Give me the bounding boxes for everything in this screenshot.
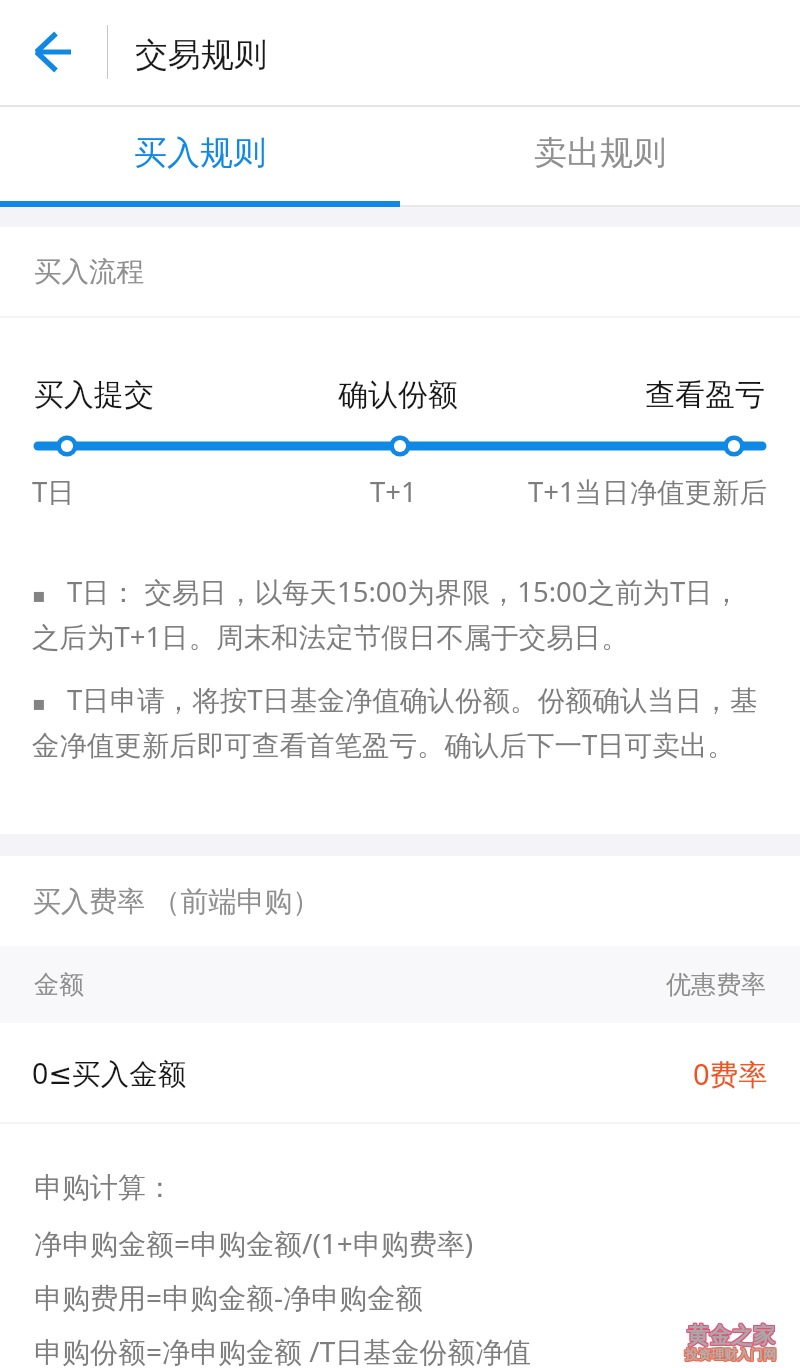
staticText: ▪ T日： 交易日，以每天15:00为界限，15:00之前为T日，之后为T+1日…	[32, 573, 762, 655]
staticText: 黄金之家	[688, 1323, 776, 1351]
button[interactable]: 卖出规则	[400, 105, 800, 201]
staticText: 投资理财入门网	[686, 1347, 777, 1363]
staticText: 黄金之家	[687, 1323, 775, 1351]
staticText: 投资理财入门网	[684, 1347, 775, 1363]
staticText: 投资理财入门网	[685, 1345, 776, 1361]
staticText: 0≤买入金额	[32, 1054, 187, 1093]
staticText: 交易规则	[135, 34, 267, 76]
staticText: 优惠费率	[666, 969, 766, 1000]
staticText: 查看盈亏	[645, 376, 765, 414]
staticText: T日	[32, 473, 75, 511]
staticText: ▪ T日申请，将按T日基金净值确认份额。份额确认当日，基金净值更新后即可查看首笔…	[32, 681, 762, 763]
staticText: 净申购金额=申购金额/(1+申购费率)	[34, 1224, 474, 1262]
staticText: 买入费率 （前端申购）	[33, 881, 321, 919]
staticText: 申购费用=申购金额-净申购金额	[34, 1278, 424, 1316]
staticText: 黄金之家	[686, 1323, 774, 1351]
staticText: 黄金之家	[688, 1322, 776, 1350]
staticText: 投资理财入门网	[684, 1345, 775, 1361]
button[interactable]: 0≤买入金额	[0, 1023, 800, 1124]
staticText: T+1当日净值更新后	[528, 473, 768, 511]
staticText: 黄金之家	[687, 1322, 775, 1350]
staticText: 黄金之家	[686, 1322, 774, 1350]
staticText: T+1	[370, 473, 417, 510]
staticText: 买入流程	[34, 255, 144, 290]
button[interactable]: Back	[0, 0, 105, 105]
staticText: 买入规则	[134, 132, 266, 174]
staticText: 买入提交	[34, 376, 154, 414]
staticText: 0费率	[693, 1054, 768, 1094]
staticText: 金额	[34, 969, 84, 1000]
button[interactable]: 买入规则	[0, 105, 400, 201]
staticText: 黄金之家	[686, 1321, 774, 1349]
staticText: 卖出规则	[534, 132, 666, 174]
staticText: 确认份额	[338, 376, 458, 414]
staticText: 黄金之家	[687, 1321, 775, 1349]
staticText: 申购计算：	[34, 1170, 174, 1205]
staticText: 投资理财入门网	[686, 1345, 777, 1361]
staticText: 黄金之家	[688, 1321, 776, 1349]
staticText: 投资理财入门网	[685, 1346, 776, 1362]
staticText: 申购份额=净申购金额 /T日基金份额净值	[34, 1332, 532, 1368]
staticText: 投资理财入门网	[685, 1347, 776, 1363]
staticText: 投资理财入门网	[684, 1346, 775, 1362]
staticText: 投资理财入门网	[686, 1346, 777, 1362]
